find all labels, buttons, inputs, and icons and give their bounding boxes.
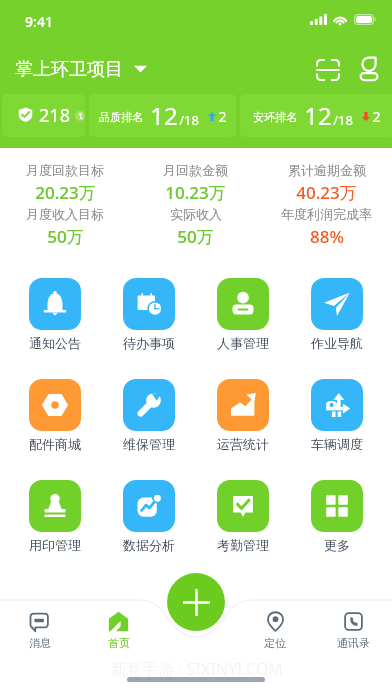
staticText: 通知公告 (29, 335, 81, 351)
staticText: 12 (304, 99, 332, 132)
button[interactable]: 品质排名 (89, 94, 236, 137)
staticText: 掌上环卫项目 (15, 58, 123, 81)
staticText: 88% (310, 225, 344, 248)
staticText: 月度回款目标 (26, 162, 104, 178)
staticText: 数据分析 (123, 537, 175, 553)
button[interactable]: 新增 (167, 573, 225, 631)
staticText: 通讯录 (337, 636, 370, 650)
button[interactable]: 安环排名 (240, 94, 392, 137)
staticText: 12 (150, 99, 178, 132)
button[interactable]: 年度利润完成率 (261, 206, 392, 248)
staticText: 2 (372, 107, 381, 126)
staticText: 50万 (177, 225, 214, 248)
staticText: 待办事项 (123, 335, 175, 351)
button[interactable]: 配件商城 (8, 379, 102, 480)
staticText: /18 (333, 111, 353, 129)
staticText: 考勤管理 (217, 537, 269, 553)
staticText: 更多 (324, 537, 350, 553)
button[interactable]: 通知公告 (8, 278, 102, 379)
staticText: 运营统计 (217, 436, 269, 452)
staticText: 用印管理 (29, 537, 81, 553)
button[interactable]: 实际收入 (130, 206, 261, 248)
button[interactable]: 扫一扫 (310, 52, 346, 88)
staticText: 50万 (47, 225, 84, 248)
staticText: 维保管理 (123, 436, 175, 452)
button[interactable]: 定位 (236, 609, 314, 652)
button[interactable]: 通讯录 (314, 609, 392, 652)
staticText: 9:41 (25, 12, 53, 31)
button[interactable]: 月度收入目标 (0, 206, 130, 248)
button[interactable]: 218 (2, 94, 85, 137)
staticText: 车辆调度 (311, 436, 363, 452)
button[interactable]: 运营统计 (196, 379, 290, 480)
button[interactable]: 月度回款目标 (0, 162, 130, 204)
staticText: 月度收入目标 (26, 206, 104, 222)
button[interactable]: 数据分析 (102, 480, 196, 581)
button[interactable]: 维保管理 (102, 379, 196, 480)
button[interactable]: 待办事项 (102, 278, 196, 379)
staticText: 实际收入 (170, 206, 222, 222)
button[interactable]: 更多 (290, 480, 384, 581)
staticText: 10.23万 (165, 181, 226, 204)
staticText: 月回款金额 (163, 162, 228, 178)
button[interactable]: 用印管理 (8, 480, 102, 581)
staticText: 消息 (29, 636, 51, 650)
staticText: 新意手游 · SIXINYI.COM (110, 658, 283, 680)
staticText: 218 (39, 103, 70, 128)
button[interactable]: 作业导航 (290, 278, 384, 379)
staticText: 人事管理 (217, 335, 269, 351)
staticText: 定位 (264, 636, 286, 650)
staticText: 安环排名 (253, 110, 297, 124)
button[interactable]: 掌上环卫项目 (0, 47, 155, 91)
staticText: 累计逾期金额 (288, 162, 366, 178)
staticText: 2 (218, 107, 227, 126)
staticText: /18 (179, 111, 199, 129)
staticText: 首页 (108, 636, 130, 650)
staticText: 20.23万 (35, 181, 96, 204)
staticText: 配件商城 (29, 436, 81, 452)
staticText: 品质排名 (99, 110, 143, 124)
button[interactable]: 消息 (0, 609, 79, 652)
button[interactable]: 考勤管理 (196, 480, 290, 581)
button[interactable]: 首页 (79, 609, 158, 652)
button[interactable]: 人事管理 (196, 278, 290, 379)
button[interactable]: 月回款金额 (130, 162, 261, 204)
button[interactable]: 车辆调度 (290, 379, 384, 480)
button[interactable]: 累计逾期金额 (261, 162, 392, 204)
staticText: 作业导航 (311, 335, 363, 351)
staticText: 40.23万 (296, 181, 357, 204)
button[interactable]: 我的 (351, 52, 387, 88)
staticText: 年度利润完成率 (281, 206, 372, 222)
